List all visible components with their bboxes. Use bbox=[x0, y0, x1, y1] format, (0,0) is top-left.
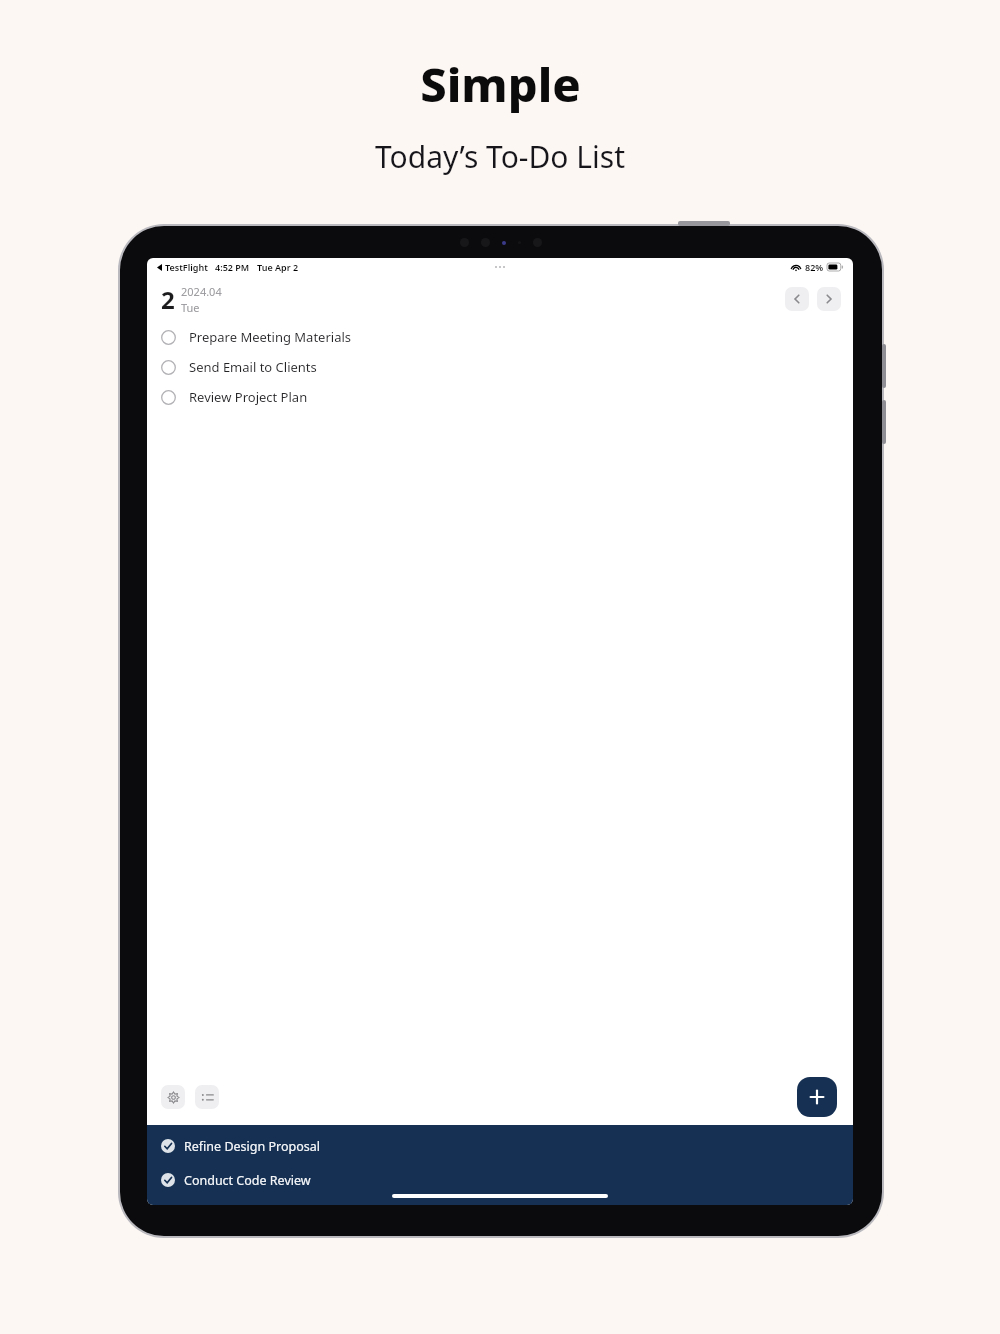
button[interactable]: Next day bbox=[817, 287, 841, 311]
button[interactable]: Send Email to Clients bbox=[147, 352, 853, 382]
button[interactable]: Prepare Meeting Materials bbox=[147, 322, 853, 352]
staticText: 2024.04 bbox=[181, 284, 222, 299]
button[interactable]: Settings bbox=[161, 1085, 185, 1109]
button[interactable]: Review Project Plan bbox=[147, 382, 853, 412]
staticText: Simple bbox=[420, 52, 581, 116]
button[interactable]: Refine Design Proposal bbox=[161, 1133, 853, 1159]
staticText: Conduct Code Review bbox=[184, 1172, 311, 1189]
staticText: 4:52 PM bbox=[215, 261, 250, 273]
staticText: Tue bbox=[181, 300, 200, 315]
staticText: 82% bbox=[805, 261, 824, 273]
button[interactable]: List options bbox=[195, 1085, 219, 1109]
staticText: Tue Apr 2 bbox=[257, 261, 299, 273]
staticText: 2 bbox=[161, 283, 175, 316]
staticText: Review Project Plan bbox=[189, 388, 308, 406]
staticText: Today’s To-Do List bbox=[375, 136, 625, 177]
staticText: Send Email to Clients bbox=[189, 358, 317, 376]
button[interactable]: Previous day bbox=[785, 287, 809, 311]
button[interactable]: Conduct Code Review bbox=[161, 1167, 853, 1193]
staticText: Prepare Meeting Materials bbox=[189, 328, 352, 346]
staticText: TestFlight bbox=[165, 261, 208, 273]
staticText: Refine Design Proposal bbox=[184, 1138, 320, 1155]
button[interactable]: Add task bbox=[797, 1077, 837, 1117]
